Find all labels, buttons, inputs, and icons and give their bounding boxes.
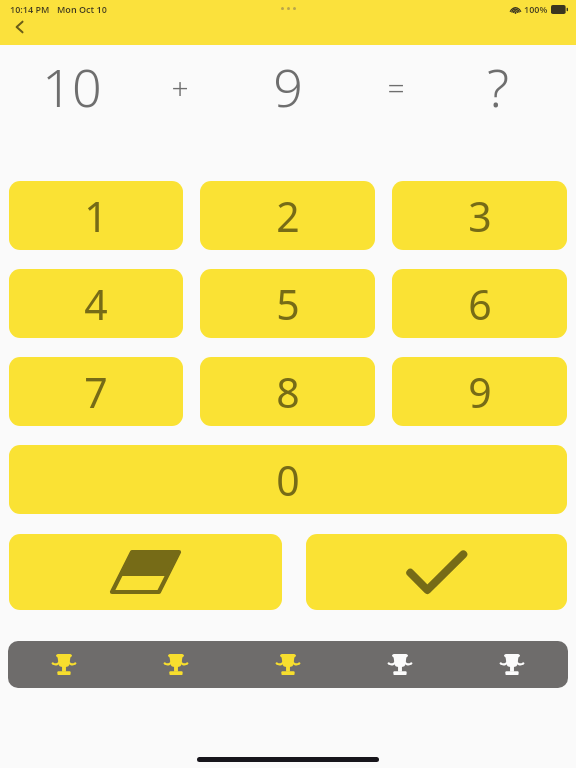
button[interactable]: Confirm xyxy=(306,534,567,610)
staticText: 5 xyxy=(276,276,300,332)
button[interactable]: Trophy xyxy=(8,641,120,688)
staticText: 100% xyxy=(524,3,548,15)
button[interactable]: Back xyxy=(2,9,38,45)
staticText: 3 xyxy=(468,188,492,244)
button[interactable]: 3 xyxy=(392,181,567,250)
staticText: 2 xyxy=(276,188,300,244)
staticText: 1 xyxy=(84,188,108,244)
staticText: 0 xyxy=(276,452,300,508)
button[interactable]: Trophy xyxy=(120,641,232,688)
staticText: Mon Oct 10 xyxy=(57,3,107,15)
button[interactable]: Erase xyxy=(9,534,282,610)
staticText: ? xyxy=(487,51,509,122)
button[interactable]: 9 xyxy=(392,357,567,426)
button[interactable]: 0 xyxy=(9,445,567,514)
button[interactable]: Trophy xyxy=(456,641,568,688)
button[interactable]: 5 xyxy=(200,269,375,338)
button[interactable]: Trophy xyxy=(232,641,344,688)
staticText: 10:14 PM xyxy=(10,3,50,15)
staticText: + xyxy=(171,67,189,108)
button[interactable]: 2 xyxy=(200,181,375,250)
button[interactable]: 4 xyxy=(9,269,183,338)
button[interactable]: Trophy xyxy=(344,641,456,688)
staticText: 10 xyxy=(42,51,102,122)
staticText: 6 xyxy=(468,276,492,332)
staticText: 9 xyxy=(273,51,303,122)
staticText: 4 xyxy=(84,276,108,332)
button[interactable]: 1 xyxy=(9,181,183,250)
button[interactable]: 7 xyxy=(9,357,183,426)
staticText: 9 xyxy=(468,364,492,420)
button[interactable]: 6 xyxy=(392,269,567,338)
staticText: = xyxy=(387,67,405,108)
staticText: 7 xyxy=(84,364,108,420)
staticText: 8 xyxy=(276,364,300,420)
button[interactable]: 8 xyxy=(200,357,375,426)
